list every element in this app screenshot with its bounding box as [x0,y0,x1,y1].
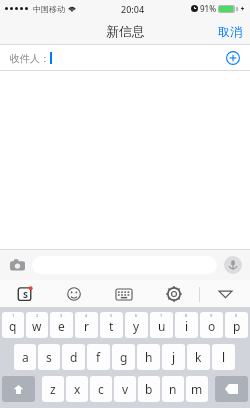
button[interactable]: Emoji [49,280,99,308]
staticText: f [96,349,101,365]
staticText: t [109,318,114,334]
button[interactable]: 4 [75,312,98,338]
staticText: v [122,381,129,397]
staticText: l [222,349,226,365]
staticText: z [50,381,56,397]
staticText: e [58,318,65,334]
staticText: 3 [60,313,63,318]
button[interactable]: m [186,376,208,402]
button[interactable]: d [62,344,85,370]
button[interactable]: 取消 [210,17,250,45]
button[interactable]: 3 [50,312,73,338]
button[interactable]: k [187,344,210,370]
button[interactable]: n [162,376,184,402]
button[interactable]: 2 [26,312,48,338]
staticText: 取消 [218,24,242,39]
button[interactable]: x [66,376,88,402]
staticText: 2 [36,313,39,318]
staticText: h [145,349,153,365]
button[interactable]: a [14,344,36,370]
staticText: u [158,318,166,334]
staticText: d [70,349,78,365]
button[interactable]: 8 [175,312,198,338]
staticText: 9 [210,313,213,318]
staticText: 4 [85,313,88,318]
button[interactable]: Hide keyboard [200,280,250,308]
button[interactable]: Add contact [222,47,244,69]
staticText: 中国移动 [33,4,65,14]
button[interactable]: 5 [100,312,123,338]
staticText: g [120,349,128,365]
staticText: m [191,381,203,397]
staticText: 收件人： [10,52,50,65]
button[interactable]: v [114,376,136,402]
button[interactable]: Sogou input [0,280,49,308]
staticText: 1 [12,313,15,318]
staticText: 7 [160,313,163,318]
button[interactable]: Delete [215,376,248,402]
staticText: 91% [200,3,216,14]
button[interactable]: b [138,376,160,402]
staticText: 20:04 [121,3,145,15]
button[interactable]: z [42,376,64,402]
staticText: c [98,381,104,397]
button[interactable]: 1 [2,312,24,338]
staticText: r [84,318,89,334]
button[interactable]: Settings [149,280,199,308]
button[interactable]: j [162,344,185,370]
staticText: k [195,349,202,365]
staticText: a [22,349,29,365]
staticText: p [233,318,241,334]
button[interactable]: h [137,344,160,370]
button[interactable]: Keyboard layout [99,280,149,308]
staticText: S [23,288,28,300]
staticText: 8 [185,313,188,318]
staticText: w [32,318,42,334]
staticText: 6 [135,313,138,318]
staticText: q [9,318,17,334]
staticText: b [145,381,153,397]
button[interactable]: Voice input [222,254,244,276]
button[interactable]: c [90,376,112,402]
button[interactable]: s [38,344,60,370]
button[interactable]: f [87,344,110,370]
staticText: i [185,318,189,334]
button[interactable]: 9 [200,312,223,338]
button[interactable]: 6 [125,312,148,338]
button[interactable]: g [112,344,135,370]
staticText: y [133,318,140,334]
staticText: j [172,349,176,365]
button[interactable]: 7 [150,312,173,338]
staticText: o [208,318,216,334]
button[interactable]: Camera [6,254,28,276]
staticText: x [74,381,81,397]
staticText: 新信息 [106,23,145,39]
staticText: n [169,381,177,397]
staticText: s [46,349,52,365]
staticText: 5 [110,313,113,318]
staticText: 0 [235,313,238,318]
button[interactable]: 0 [225,312,248,338]
button[interactable]: l [212,344,235,370]
button[interactable]: Shift [2,376,35,402]
